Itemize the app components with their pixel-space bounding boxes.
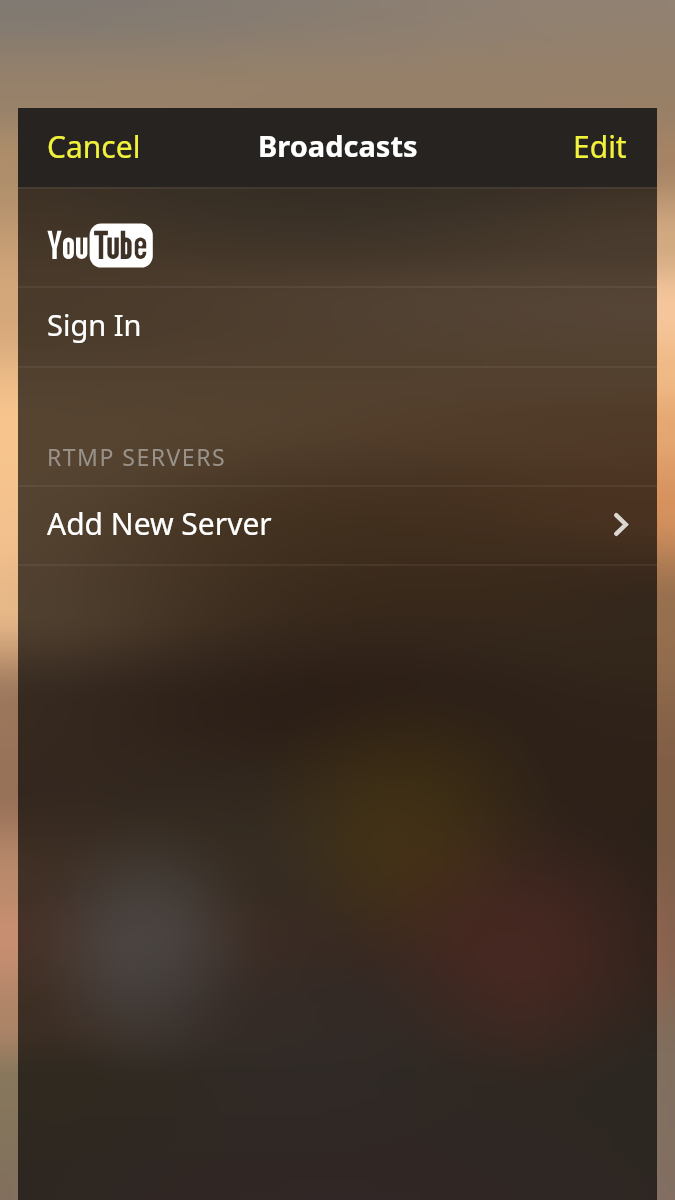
button[interactable]: Sign In — [18, 286, 657, 366]
staticText: RTMP SERVERS — [47, 441, 227, 472]
button[interactable]: Cancel — [18, 114, 163, 179]
staticText: Cancel — [47, 126, 141, 167]
button[interactable]: Add New Server — [18, 485, 657, 564]
staticText: Broadcasts — [258, 126, 418, 165]
staticText: Add New Server — [47, 503, 272, 544]
other: Add New Server — [614, 513, 628, 536]
button[interactable]: Edit — [551, 114, 657, 179]
staticText: Edit — [573, 126, 627, 167]
staticText: Sign In — [47, 305, 142, 344]
button[interactable]: YouTube — [18, 187, 657, 286]
